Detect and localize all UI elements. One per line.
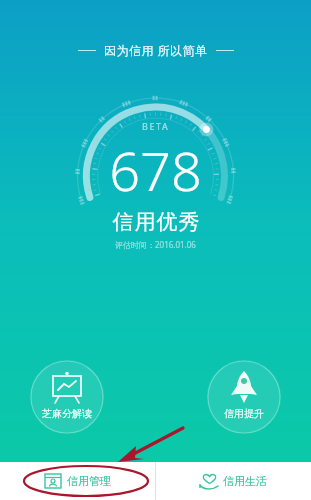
staticText: 信用优秀 — [112, 209, 200, 235]
staticText: 信用提升 — [224, 407, 264, 420]
staticText: 信用管理 — [67, 474, 111, 488]
button[interactable]: 信用管理 — [0, 462, 155, 500]
staticText: 678 — [109, 133, 202, 207]
button[interactable]: 信用提升 — [207, 360, 281, 434]
button[interactable]: 芝麻分解读 — [30, 360, 104, 434]
staticText: 因为信用 所以简单 — [104, 42, 208, 58]
staticText: 芝麻分解读 — [42, 407, 92, 420]
other: 信用生活 — [200, 472, 218, 490]
staticText: 评估时间：2016.01.06 — [115, 239, 196, 250]
other: 信用管理 — [44, 472, 62, 490]
staticText: 信用生活 — [223, 474, 267, 488]
button[interactable]: 信用生活 — [156, 462, 311, 500]
staticText: BETA — [142, 120, 170, 132]
